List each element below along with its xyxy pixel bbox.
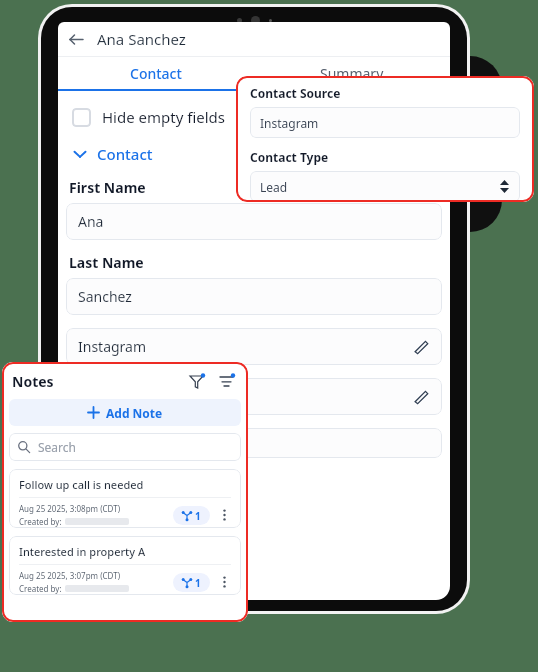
button[interactable]: Contact xyxy=(58,57,254,89)
staticText: Lead xyxy=(260,179,288,195)
button[interactable]: Instagram xyxy=(66,328,442,365)
staticText: Contact xyxy=(97,144,153,164)
staticText: Contact xyxy=(130,64,182,83)
button[interactable]: Linked records xyxy=(173,573,210,592)
staticText: Ana xyxy=(78,212,104,231)
button[interactable] xyxy=(66,378,442,415)
staticText: Contact Type xyxy=(250,149,329,165)
button[interactable]: Follow up call is needed xyxy=(9,469,241,528)
button[interactable]: Add Note xyxy=(9,399,241,426)
button[interactable]: Back xyxy=(64,27,88,51)
staticText: 1 xyxy=(195,509,201,523)
staticText: Instagram xyxy=(78,337,147,356)
staticText: First Name xyxy=(69,178,146,197)
button[interactable]: Ana xyxy=(66,203,442,240)
button[interactable]: Sort xyxy=(215,370,237,392)
staticText: Search xyxy=(38,439,76,455)
staticText: Notes xyxy=(12,372,54,391)
staticText: Add Note xyxy=(106,405,163,421)
button[interactable]: Instagram xyxy=(250,107,520,138)
staticText: Follow up call is needed xyxy=(19,477,144,492)
button[interactable]: Summary xyxy=(254,57,450,89)
staticText: Interested in property A xyxy=(19,544,146,559)
staticText: Created by: xyxy=(19,516,62,527)
staticText: Contact Source xyxy=(250,85,341,101)
staticText: Created by: xyxy=(19,583,62,594)
button[interactable]: More options xyxy=(217,508,231,522)
staticText: Hide empty fields xyxy=(102,107,226,127)
button[interactable]: Search xyxy=(9,433,241,461)
staticText: Aug 25 2025, 3:07pm (CDT) xyxy=(19,570,121,581)
staticText: Aug 25 2025, 3:08pm (CDT) xyxy=(19,503,121,514)
staticText: Sanchez xyxy=(78,287,132,306)
button[interactable]: Linked records xyxy=(173,506,210,525)
staticText: Instagram xyxy=(260,115,319,131)
staticText: Summary xyxy=(320,64,384,83)
button[interactable]: Interested in property A xyxy=(9,536,241,595)
button[interactable]: Contact xyxy=(72,143,153,165)
staticText: 1 xyxy=(195,576,201,590)
staticText: Ana Sanchez xyxy=(97,29,186,49)
button[interactable]: More options xyxy=(217,575,231,589)
button[interactable]: Filter xyxy=(185,370,207,392)
staticText: Last Name xyxy=(69,253,144,272)
button[interactable]: Sanchez xyxy=(66,278,442,315)
button[interactable]: Contact Type selector xyxy=(250,171,520,202)
button[interactable]: Hide empty fields xyxy=(72,105,226,129)
